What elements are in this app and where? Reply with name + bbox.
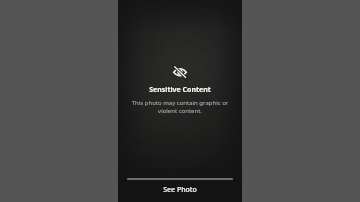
button[interactable]: See Photo <box>118 183 242 197</box>
staticText: See Photo <box>163 185 197 195</box>
other: Sensitive content hidden <box>172 64 188 80</box>
staticText: Sensitive Content <box>149 85 211 95</box>
staticText: This photo may contain graphic or violen… <box>130 99 230 115</box>
